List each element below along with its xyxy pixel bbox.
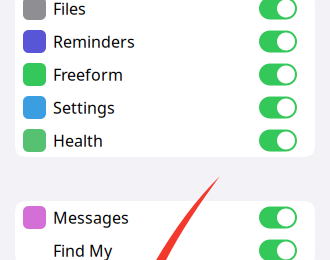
staticText: Reminders <box>53 31 135 52</box>
button[interactable]: Find My <box>15 234 315 260</box>
staticText: Find My <box>53 240 112 260</box>
button[interactable]: Settings <box>15 91 315 124</box>
button[interactable]: Reminders <box>15 25 315 58</box>
staticText: Settings <box>53 97 115 118</box>
button[interactable]: Health <box>15 124 315 157</box>
staticText: Files <box>53 0 86 19</box>
button[interactable]: Freeform <box>15 58 315 91</box>
button[interactable]: Messages <box>15 201 315 234</box>
staticText: Health <box>53 130 103 151</box>
staticText: Freeform <box>53 64 123 85</box>
staticText: Messages <box>53 207 129 228</box>
button[interactable]: Files <box>15 0 315 25</box>
